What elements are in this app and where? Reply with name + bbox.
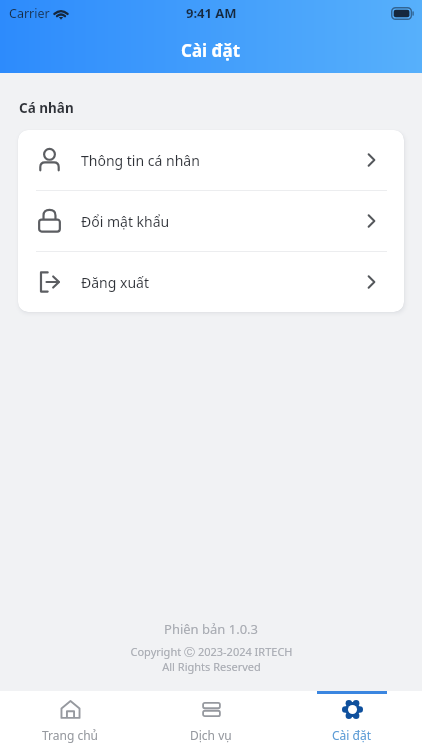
button[interactable]: Trang chủ [0,691,140,750]
staticText: Copyright Ⓒ 2023-2024 IRTECH [130,644,293,659]
staticText: Carrier [9,5,50,22]
button[interactable]: Đăng xuất [18,252,404,312]
button[interactable]: Đổi mật khẩu [18,191,404,251]
staticText: Cá nhân [19,99,74,117]
button[interactable]: Thông tin cá nhân [18,130,404,190]
staticText: Đăng xuất [81,273,149,292]
staticText: Cài đặt [181,39,241,62]
staticText: All Rights Reserved [162,659,261,674]
button[interactable]: Dịch vụ [140,691,281,750]
button[interactable]: Cài đặt [281,691,422,750]
staticText: Trang chủ [42,727,99,743]
staticText: Phiên bản 1.0.3 [164,620,258,638]
staticText: 9:41 AM [186,4,237,22]
staticText: Cài đặt [332,727,372,743]
staticText: Thông tin cá nhân [81,151,200,170]
staticText: Dịch vụ [190,727,232,743]
staticText: Đổi mật khẩu [81,212,170,231]
